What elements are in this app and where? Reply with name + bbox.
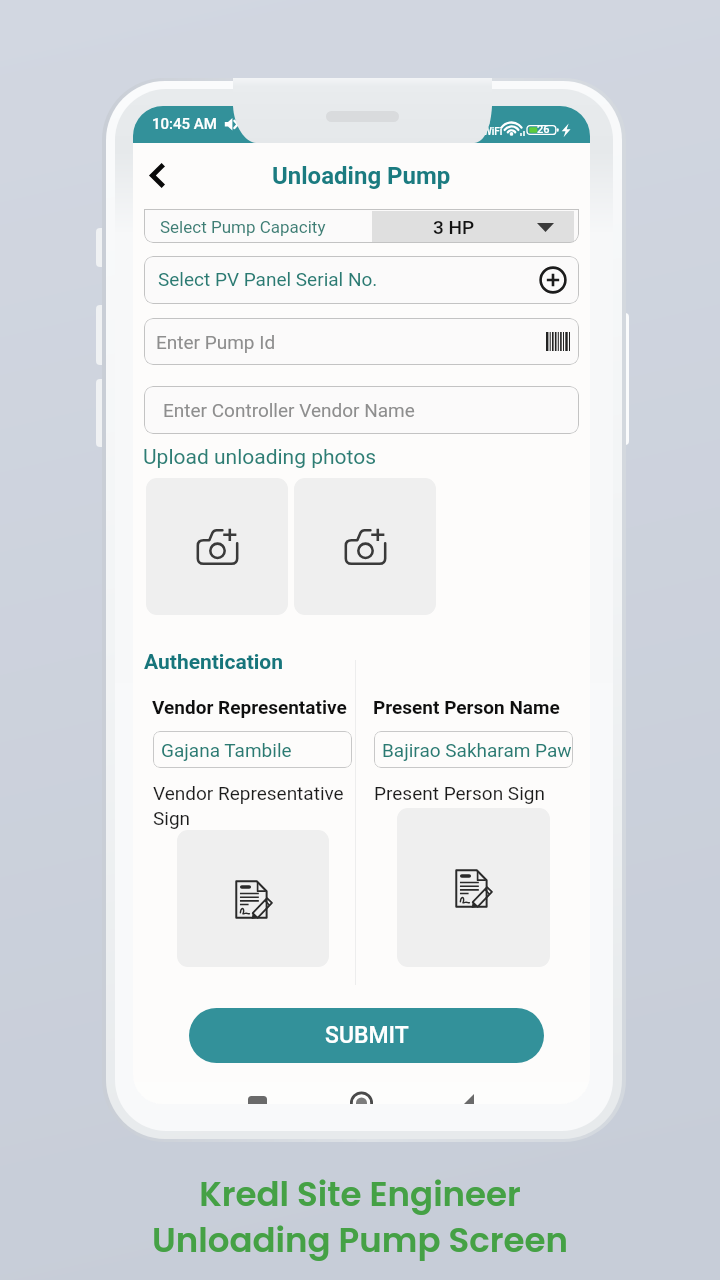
staticText: Gajana Tambile xyxy=(161,739,292,761)
button[interactable]: Select Pump Capacity xyxy=(144,209,579,243)
staticText: 26 xyxy=(537,123,550,136)
button[interactable]: Signature xyxy=(177,830,329,967)
staticText: 10:45 AM xyxy=(152,115,217,133)
staticText: Present Person Sign xyxy=(374,782,573,804)
button[interactable]: Add photo xyxy=(294,478,436,615)
staticText: Select PV Panel Serial No. xyxy=(158,268,378,290)
staticText: Select Pump Capacity xyxy=(160,217,326,237)
staticText: Bajirao Sakharam Paw xyxy=(382,739,572,761)
staticText: Authentication xyxy=(144,650,283,675)
button[interactable]: Add photo xyxy=(146,478,288,615)
staticText: Upload unloading photos xyxy=(143,445,377,470)
button[interactable]: Gajana Tambile xyxy=(153,731,352,768)
staticText: 3 HP xyxy=(433,216,475,238)
button[interactable]: Back xyxy=(135,153,179,197)
button[interactable]: Signature xyxy=(397,808,550,967)
button[interactable]: SUBMIT xyxy=(189,1008,544,1063)
staticText: Present Person Name xyxy=(373,696,560,718)
staticText: Vendor Representative Sign xyxy=(153,782,352,829)
button[interactable]: Select PV Panel Serial No. xyxy=(144,256,579,304)
staticText: Kredl Site Engineer Unloading Pump Scree… xyxy=(0,1170,720,1264)
staticText: Vendor Representative xyxy=(152,696,347,718)
button[interactable]: Bajirao Sakharam Paw xyxy=(374,731,573,768)
button[interactable]: Enter Controller Vendor Name xyxy=(144,386,579,434)
staticText: Unloading Pump xyxy=(272,162,451,190)
button[interactable]: Enter Pump Id xyxy=(144,318,579,365)
staticText: Enter Pump Id xyxy=(156,331,276,353)
staticText: WiFi xyxy=(483,126,503,138)
staticText: SUBMIT xyxy=(325,1022,409,1049)
staticText: Enter Controller Vendor Name xyxy=(163,399,415,421)
